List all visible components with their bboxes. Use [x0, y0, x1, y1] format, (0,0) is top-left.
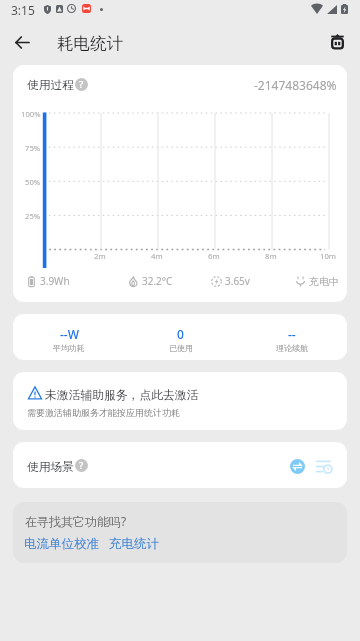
staticText: 6m	[208, 251, 220, 261]
staticText: ?	[79, 78, 84, 91]
staticText: 耗电统计	[57, 33, 123, 54]
staticText: ?	[79, 459, 84, 472]
button[interactable]: 0	[125, 314, 236, 360]
staticText: --W	[60, 326, 79, 342]
staticText: 100%	[21, 109, 41, 119]
button[interactable]: Delete	[318, 22, 357, 61]
button[interactable]: Compare	[283, 452, 311, 480]
staticText: 32.2°C	[142, 274, 173, 288]
staticText: 25%	[25, 211, 41, 221]
staticText: 在寻找其它功能吗?	[25, 513, 127, 529]
button[interactable]: Back	[2, 22, 42, 62]
staticText: 50%	[25, 177, 41, 187]
button[interactable]: 充电统计	[109, 536, 159, 552]
button[interactable]: --	[236, 314, 347, 360]
staticText: 理论续航	[276, 343, 308, 353]
staticText: 使用场景	[27, 460, 74, 475]
button[interactable]: --W	[13, 314, 125, 360]
button[interactable]: 电流单位校准	[24, 536, 99, 552]
staticText: 平均功耗	[53, 343, 85, 353]
staticText: 需要激活辅助服务才能按应用统计功耗	[27, 407, 180, 418]
staticText: 2m	[94, 251, 106, 261]
staticText: 3.9Wh	[40, 274, 70, 288]
staticText: 充电中	[309, 275, 339, 288]
staticText: 已使用	[169, 343, 193, 353]
staticText: 3:15	[11, 2, 35, 18]
staticText: 10m	[320, 251, 336, 261]
button[interactable]: 未激活辅助服务，点此去激活	[13, 372, 347, 430]
staticText: 电流单位校准	[24, 536, 99, 552]
staticText: 4m	[151, 251, 163, 261]
staticText: --	[288, 326, 296, 342]
staticText: 未激活辅助服务，点此去激活	[45, 388, 199, 403]
staticText: 使用过程	[27, 78, 74, 93]
staticText: -2147483648%	[254, 77, 337, 93]
staticText: 75%	[25, 143, 41, 153]
staticText: 0	[177, 326, 184, 342]
staticText: 充电统计	[109, 536, 159, 552]
staticText: 8m	[265, 251, 277, 261]
button[interactable]: History	[310, 452, 338, 480]
staticText: 3.65v	[225, 274, 250, 288]
